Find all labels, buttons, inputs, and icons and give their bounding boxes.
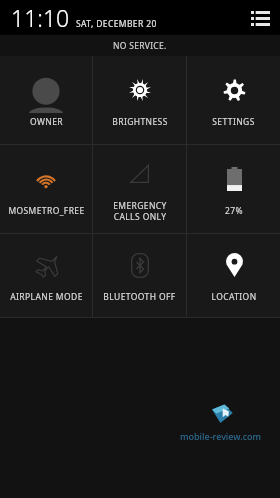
staticText: mobile-review.com	[180, 430, 262, 442]
staticText: SETTINGS	[212, 116, 255, 128]
button[interactable]: User profile	[0, 56, 92, 144]
staticText: 27%	[225, 205, 243, 217]
button[interactable]: Mobile network	[93, 145, 186, 233]
button[interactable]: Bluetooth	[93, 234, 186, 317]
staticText: 11:10	[11, 2, 70, 33]
button[interactable]: Airplane mode	[0, 234, 92, 317]
staticText: BLUETOOTH OFF	[103, 291, 176, 303]
staticText: MOSMETRO_FREE	[8, 205, 85, 217]
staticText: OWNER	[30, 116, 63, 128]
button[interactable]: Location	[187, 234, 280, 317]
button[interactable]: Brightness	[93, 56, 186, 144]
staticText: AIRPLANE MODE	[10, 291, 83, 303]
button[interactable]: Settings	[187, 56, 280, 144]
button[interactable]: Wi-Fi	[0, 145, 92, 233]
staticText: BRIGHTNESS	[112, 116, 168, 128]
button[interactable]: Notifications list	[248, 6, 272, 30]
staticText: NO SERVICE.	[113, 40, 167, 52]
staticText: SAT, DECEMBER 20	[76, 18, 157, 30]
button[interactable]: Battery	[187, 145, 280, 233]
staticText: EMERGENCY CALLS ONLY	[113, 200, 167, 222]
staticText: LOCATION	[211, 291, 257, 303]
